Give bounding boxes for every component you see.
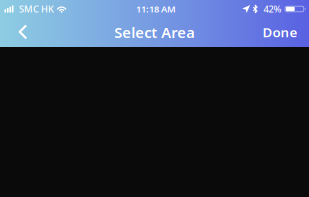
- staticText: 42%: [263, 3, 281, 15]
- staticText: Select Area: [114, 23, 195, 42]
- staticText: SMC HK: [19, 3, 54, 15]
- button[interactable]: Back: [5, 16, 41, 48]
- staticText: Done: [263, 23, 298, 41]
- button[interactable]: Done: [258, 16, 302, 48]
- staticText: 11:18 AM: [136, 3, 176, 15]
